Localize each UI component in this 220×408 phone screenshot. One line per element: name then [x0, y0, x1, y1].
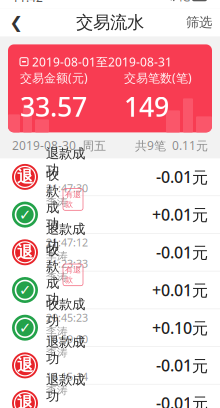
button[interactable]: ✓	[0, 271, 220, 308]
staticText: 退	[17, 393, 33, 408]
staticText: 11:42	[12, 0, 43, 5]
staticText: ✓	[19, 282, 31, 298]
staticText: 有退款	[65, 190, 81, 209]
staticText: ✓	[19, 206, 31, 223]
staticText: 21:47:30 李涛	[46, 181, 91, 208]
staticText: 收款成功	[46, 296, 85, 329]
staticText: 2019-08-30 周五	[12, 137, 106, 153]
staticText: 退款成功	[46, 334, 85, 367]
staticText: 退	[17, 356, 33, 375]
button[interactable]: ✓	[0, 309, 220, 346]
staticText: +0.01元	[152, 204, 208, 225]
button[interactable]: ✓	[0, 196, 220, 233]
staticText: 有退款	[65, 265, 81, 285]
staticText: +0.01元	[152, 279, 208, 301]
staticText: 交易笔数(笔)	[124, 70, 192, 86]
staticText: 退	[17, 167, 33, 187]
staticText: 33.57	[20, 89, 87, 124]
staticText: 149	[124, 89, 169, 124]
staticText: 退款成功	[46, 372, 85, 404]
staticText: 16:59:00 李涛	[46, 332, 91, 359]
staticText: 16:15:14 李涛	[46, 370, 91, 397]
button[interactable]: 退	[0, 385, 220, 408]
button[interactable]: Back	[0, 8, 32, 36]
staticText: 交易金额(元)	[20, 70, 88, 86]
button[interactable]: 退	[0, 158, 220, 195]
staticText: ✓	[19, 319, 31, 336]
staticText: 21:23:33 李涛	[46, 256, 91, 284]
staticText: -0.01元	[156, 355, 208, 376]
staticText: 21:47:12 李涛	[46, 235, 91, 262]
staticText: +0.10元	[152, 317, 208, 338]
staticText: 2019-08-01至2019-08-31	[32, 54, 172, 70]
staticText: 收款成功	[46, 242, 59, 308]
staticText: 20:45:23 李涛	[46, 311, 91, 338]
staticText: -0.01元	[156, 392, 208, 408]
button[interactable]: 筛选	[178, 8, 220, 36]
staticText: 退款成功	[46, 145, 85, 178]
staticText: 交易流水	[76, 12, 144, 33]
staticText: 退	[17, 242, 33, 262]
staticText: ❮	[9, 13, 22, 31]
staticText: -0.01元	[156, 242, 208, 263]
staticText: 收款成功	[46, 167, 59, 232]
button[interactable]: 退	[0, 234, 220, 271]
staticText: 共9笔 0.11元	[135, 137, 208, 153]
staticText: 4G	[176, 0, 190, 4]
staticText: 筛选	[186, 14, 212, 31]
staticText: -0.01元	[156, 166, 208, 187]
button[interactable]: 退	[0, 347, 220, 384]
staticText: 退款成功	[46, 221, 85, 254]
